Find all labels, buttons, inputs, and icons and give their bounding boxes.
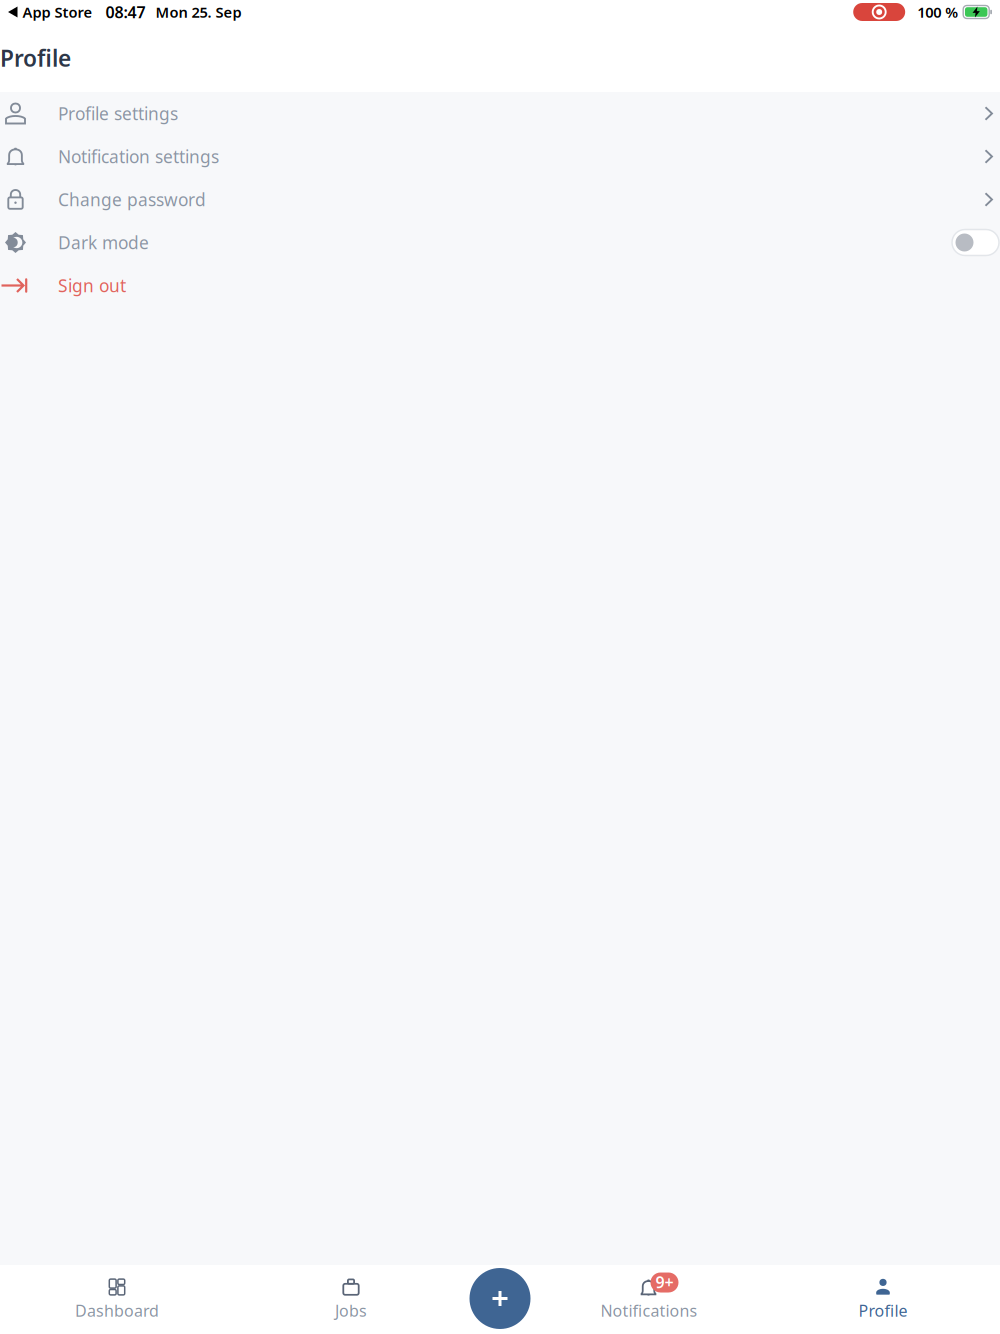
staticText: Notifications <box>600 1300 697 1321</box>
button[interactable]: Change password <box>0 178 1000 221</box>
button[interactable]: Sign out <box>0 264 1000 307</box>
staticText: Sign out <box>58 274 126 297</box>
staticText: 100 % <box>917 2 958 22</box>
staticText: Jobs <box>335 1300 367 1321</box>
button[interactable]: 9+ <box>532 1265 766 1334</box>
button[interactable]: Add <box>469 1268 530 1329</box>
staticText: 9+ <box>655 1271 673 1293</box>
staticText: Dashboard <box>75 1300 159 1321</box>
button[interactable]: Notification settings <box>0 135 1000 178</box>
staticText: Profile settings <box>58 102 178 125</box>
staticText: Dark mode <box>58 231 149 254</box>
staticText: 08:47 <box>105 1 145 23</box>
staticText: Profile <box>0 43 71 73</box>
staticText: Profile <box>858 1300 907 1321</box>
staticText: Notification settings <box>58 145 219 168</box>
staticText: App Store <box>22 2 92 22</box>
staticText: Mon 25. Sep <box>155 2 241 22</box>
staticText: Change password <box>58 188 206 211</box>
button[interactable]: Dark mode <box>0 221 1000 264</box>
button[interactable]: Jobs <box>234 1265 468 1334</box>
button[interactable]: Profile <box>766 1265 1000 1334</box>
button[interactable]: Dashboard <box>0 1265 234 1334</box>
button[interactable]: Profile settings <box>0 92 1000 135</box>
